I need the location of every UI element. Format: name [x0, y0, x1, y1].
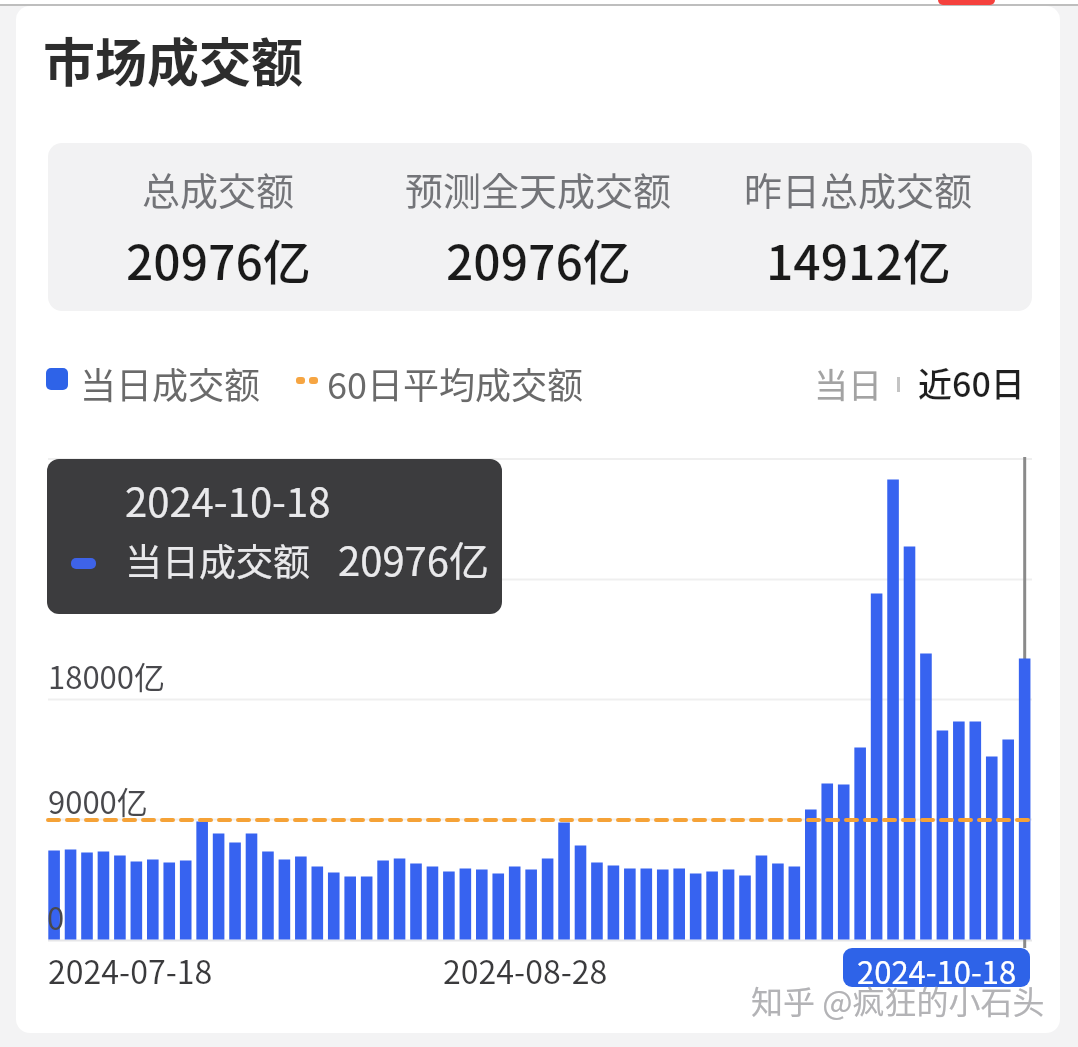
staticText: 20976亿 [126, 224, 311, 294]
button[interactable]: 近60日 [910, 358, 1017, 407]
staticText: 总成交额 [142, 161, 295, 216]
button[interactable]: 总成交额 [58, 143, 378, 311]
staticText: 2024-10-18 [857, 948, 1017, 987]
staticText: 当日成交额 [125, 533, 310, 587]
staticText: 9000亿 [48, 778, 148, 823]
staticText: 2024-10-18 [125, 471, 331, 529]
staticText: 60日平均成交额 [327, 357, 583, 409]
staticText: 14912亿 [766, 224, 951, 294]
button[interactable] [938, 0, 995, 5]
button[interactable]: 2024-10-18 [843, 948, 1030, 987]
button[interactable]: 当日 [806, 359, 874, 408]
button[interactable]: 预测全天成交额 [378, 143, 698, 311]
staticText: 近60日 [918, 358, 1025, 407]
staticText: 2024-07-18 [48, 947, 213, 993]
staticText: 2024-08-28 [443, 947, 608, 993]
staticText: 0 [47, 894, 65, 939]
staticText: 市场成交额 [43, 22, 304, 97]
staticText: 20976亿 [338, 530, 489, 588]
staticText: 预测全天成交额 [405, 161, 672, 216]
staticText: 知乎 @疯狂的小石头 [751, 977, 1045, 1023]
staticText: 昨日总成交额 [744, 161, 973, 216]
staticText: 20976亿 [446, 224, 631, 294]
staticText: 当日成交额 [80, 357, 261, 409]
button[interactable]: 昨日总成交额 [698, 143, 1018, 311]
staticText: 18000亿 [48, 653, 166, 698]
staticText: 当日 [814, 359, 882, 408]
